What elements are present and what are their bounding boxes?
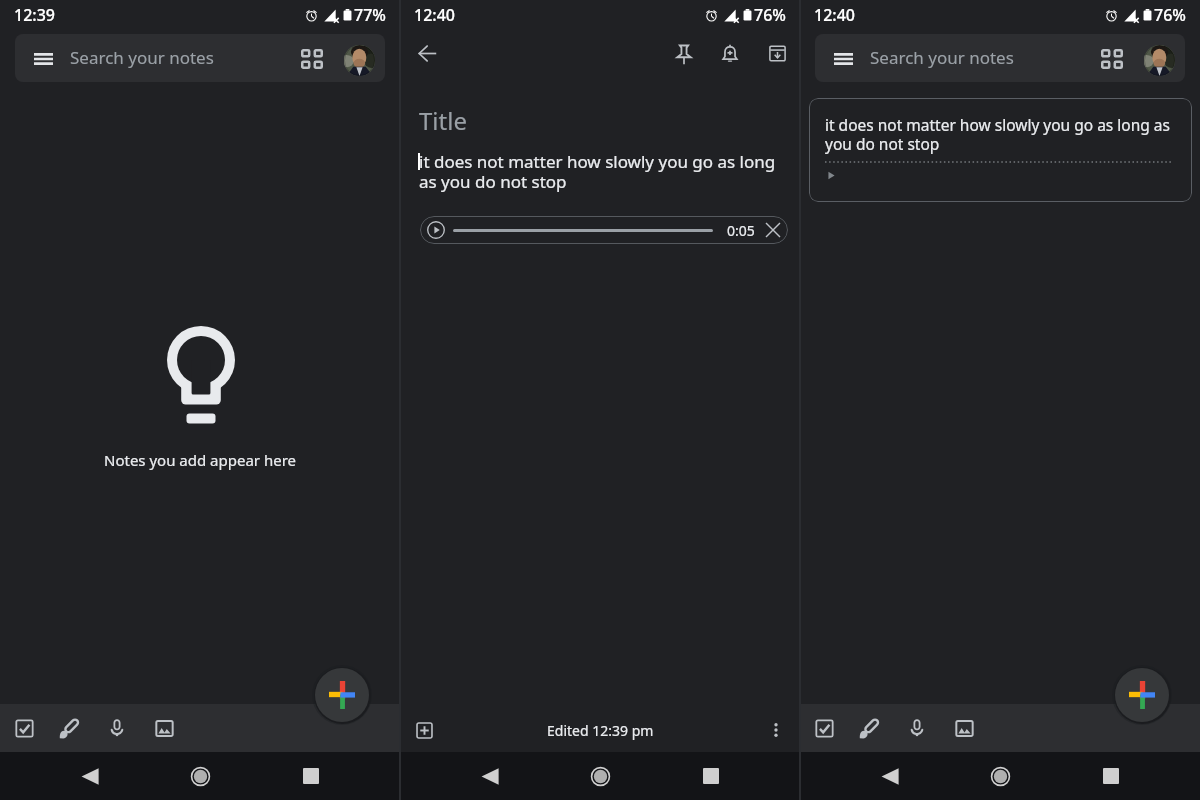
button[interactable]: Archive — [763, 39, 792, 68]
button[interactable]: Recent apps — [1087, 752, 1135, 800]
button[interactable]: New image note — [142, 704, 186, 752]
staticText: 0:05 — [727, 221, 755, 240]
staticText: 77% — [354, 4, 386, 26]
button[interactable]: Pin note — [669, 40, 698, 69]
button[interactable]: Home — [576, 752, 624, 800]
button[interactable]: Back — [866, 752, 914, 800]
button[interactable]: Recent apps — [287, 752, 335, 800]
staticText: Search your notes — [70, 46, 214, 69]
button[interactable]: New voice note — [95, 704, 139, 752]
button[interactable]: Back — [66, 752, 114, 800]
staticText: 12:40 — [414, 4, 455, 26]
button[interactable]: More options — [760, 714, 792, 746]
staticText: Edited 12:39 pm — [547, 721, 654, 740]
button[interactable]: Open navigation drawer — [31, 47, 55, 71]
button[interactable]: Home — [976, 752, 1024, 800]
button[interactable]: Add — [408, 714, 440, 746]
button[interactable]: Switch to grid view — [294, 43, 330, 75]
button[interactable]: Remind me — [715, 40, 744, 69]
staticText: Title — [419, 104, 467, 137]
button[interactable]: New drawing — [47, 704, 91, 752]
staticText: 12:40 — [814, 4, 855, 26]
button[interactable]: Back — [466, 752, 514, 800]
button[interactable]: Open navigation drawer — [831, 47, 855, 71]
staticText: it does not matter how slowly you go as … — [419, 150, 781, 193]
staticText: Search your notes — [870, 46, 1014, 69]
staticText: 76% — [754, 4, 786, 26]
button[interactable]: Create new note — [1111, 664, 1173, 726]
button[interactable]: Recent apps — [687, 752, 735, 800]
button[interactable]: Create new note — [311, 664, 373, 726]
button[interactable]: Home — [176, 752, 224, 800]
button[interactable]: New list — [2, 704, 46, 752]
button[interactable]: Switch to grid view — [1094, 43, 1130, 75]
button[interactable]: Play recording — [425, 219, 447, 241]
staticText: Notes you add appear here — [104, 450, 297, 470]
button[interactable]: Play recording — [420, 216, 788, 244]
button[interactable]: Account — [1141, 42, 1177, 78]
staticText: 12:39 — [14, 4, 55, 26]
button[interactable]: New list — [802, 704, 846, 752]
button[interactable]: New drawing — [847, 704, 891, 752]
button[interactable]: it does not matter how slowly you go as … — [809, 98, 1192, 202]
button[interactable]: Back — [413, 39, 442, 68]
staticText: 76% — [1154, 4, 1186, 26]
button[interactable]: Delete recording — [762, 219, 784, 241]
button[interactable]: Open navigation drawer — [15, 34, 385, 82]
button[interactable]: New image note — [942, 704, 986, 752]
staticText: it does not matter how slowly you go as … — [825, 114, 1175, 154]
button[interactable]: Account — [341, 42, 377, 78]
button[interactable]: New voice note — [895, 704, 939, 752]
button[interactable]: Open navigation drawer — [815, 34, 1185, 82]
